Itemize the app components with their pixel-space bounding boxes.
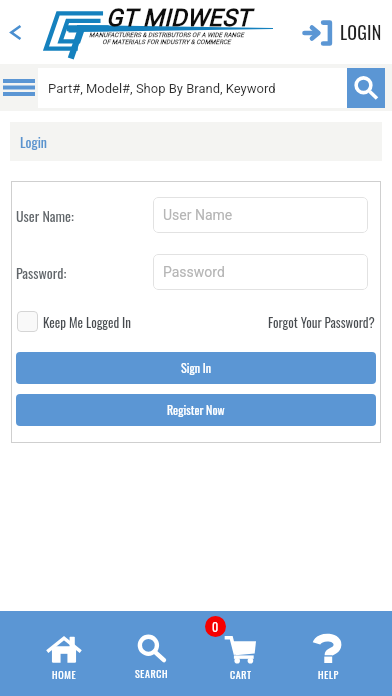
button[interactable]: Sign In — [16, 352, 376, 384]
button[interactable]: Forgot Your Password? — [268, 312, 375, 331]
staticText: 0 — [212, 618, 219, 636]
button[interactable]: HELP — [284, 611, 372, 696]
staticText: Password: — [16, 262, 153, 283]
button[interactable]: Register Now — [16, 394, 376, 426]
button[interactable]: User Name — [153, 197, 368, 233]
button[interactable]: Menu — [0, 64, 38, 111]
button[interactable]: Back — [0, 0, 30, 64]
staticText: HELP — [318, 667, 339, 682]
staticText: GT MIDWEST — [106, 4, 251, 32]
button[interactable]: CART — [196, 611, 284, 696]
button[interactable]: SEARCH — [108, 611, 196, 696]
staticText: User Name — [163, 207, 233, 223]
button[interactable]: Part#, Model#, Shop By Brand, Keyword — [38, 68, 347, 108]
staticText: Password — [163, 264, 225, 280]
staticText: HOME — [52, 667, 77, 682]
button[interactable]: Password — [153, 254, 368, 290]
button[interactable]: Keep Me Logged In — [17, 311, 132, 332]
staticText: Part#, Model#, Shop By Brand, Keyword — [48, 81, 276, 96]
button[interactable]: Login — [20, 131, 47, 152]
staticText: LOGIN — [340, 19, 382, 46]
staticText: User Name: — [16, 205, 153, 226]
button[interactable]: LOGIN — [302, 19, 382, 46]
staticText: Register Now — [167, 401, 225, 419]
staticText: Keep Me Logged In — [43, 312, 132, 331]
staticText: SEARCH — [135, 666, 169, 681]
staticText: CART — [230, 667, 252, 682]
staticText: Sign In — [181, 359, 211, 377]
button[interactable]: HOME — [20, 611, 108, 696]
button[interactable]: Search — [347, 68, 385, 108]
staticText: MANUFACTURERS & DISTRIBUTORS OF A WIDE R… — [89, 31, 244, 46]
